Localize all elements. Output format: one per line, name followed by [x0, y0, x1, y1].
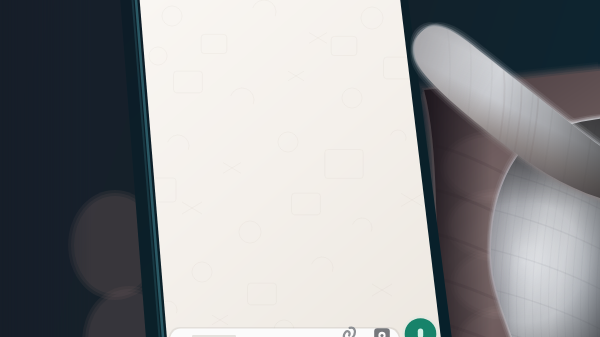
other: Hand holding a phone showing a chat app: [0, 0, 600, 337]
